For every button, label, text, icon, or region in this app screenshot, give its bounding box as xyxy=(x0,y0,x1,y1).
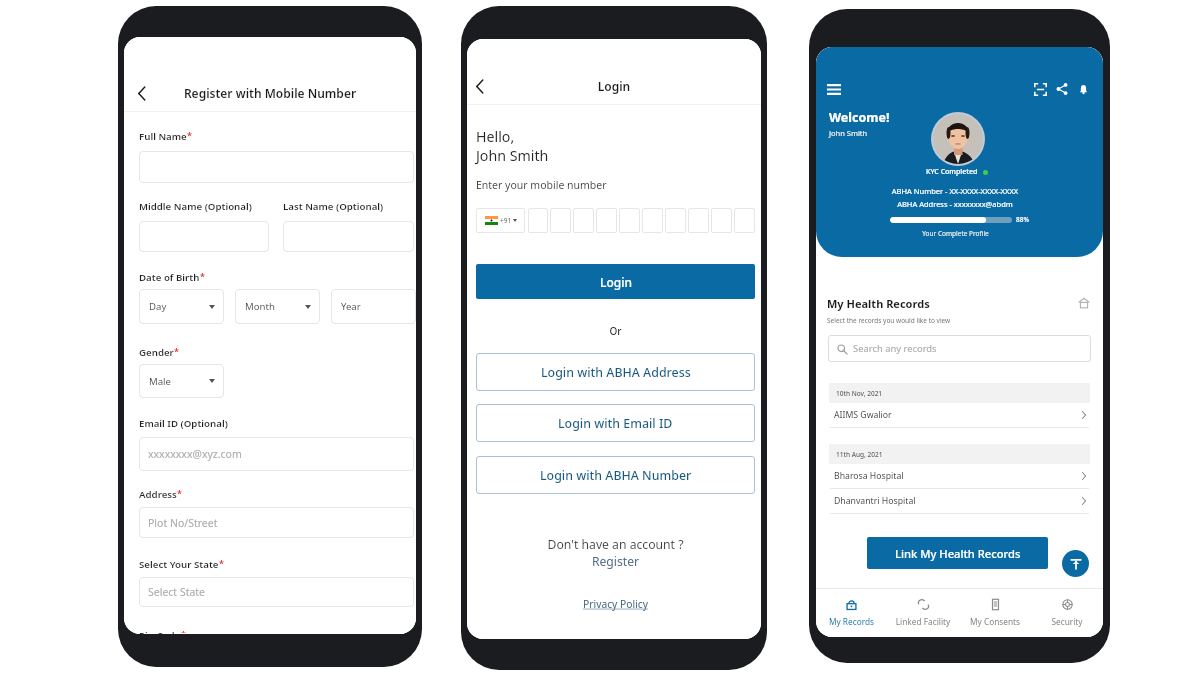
staticText: John Smith xyxy=(829,128,868,138)
staticText: Don't have an account ? xyxy=(476,536,755,553)
staticText: * xyxy=(219,557,224,569)
staticText: Gender xyxy=(139,346,174,359)
staticText: * xyxy=(200,270,205,282)
button[interactable] xyxy=(139,151,414,183)
staticText: Login with Email ID xyxy=(558,415,673,432)
button[interactable]: Share xyxy=(1053,80,1071,98)
staticText: Login xyxy=(600,274,632,290)
staticText: Register xyxy=(476,553,755,570)
button[interactable]: Scan QR xyxy=(1031,80,1049,98)
button[interactable]: Linked Facility xyxy=(887,589,959,637)
button[interactable] xyxy=(283,221,414,252)
staticText: Privacy Policy xyxy=(583,597,648,611)
staticText: * xyxy=(187,129,192,141)
staticText: Enter your mobile number xyxy=(476,178,607,192)
button[interactable]: Home xyxy=(1076,295,1092,311)
staticText: Last Name (Optional) xyxy=(283,200,384,213)
staticText: Login xyxy=(467,78,761,94)
staticText: Full Name xyxy=(139,130,187,143)
staticText: Register with Mobile Number xyxy=(124,85,416,101)
button[interactable]: Back xyxy=(470,76,490,96)
button[interactable] xyxy=(688,208,709,233)
staticText: Address xyxy=(139,488,177,501)
staticText: ABHA Address - xxxxxxxx@abdm xyxy=(816,199,1094,209)
button[interactable] xyxy=(596,208,617,233)
staticText: My Records xyxy=(816,616,887,627)
button[interactable] xyxy=(139,221,269,252)
staticText: +91 xyxy=(500,216,512,225)
staticText: My Health Records xyxy=(827,296,930,311)
staticText: Day xyxy=(149,300,167,313)
button[interactable] xyxy=(550,208,571,233)
button[interactable]: AIIMS Gwalior xyxy=(816,403,1103,428)
staticText: 10th Nov, 2021 xyxy=(836,389,883,398)
button[interactable]: Login with ABHA Number xyxy=(476,456,755,494)
staticText: Month xyxy=(245,300,275,313)
button[interactable]: Day xyxy=(139,289,224,324)
staticText: Pin Code xyxy=(139,629,181,634)
staticText: Your Complete Profile xyxy=(816,229,1095,238)
staticText: Login with ABHA Number xyxy=(540,467,692,484)
staticText: Security xyxy=(1031,616,1103,627)
staticText: Or xyxy=(476,324,755,338)
button[interactable]: Privacy Policy xyxy=(476,597,755,611)
button[interactable]: Year xyxy=(331,289,416,324)
button[interactable]: Notifications xyxy=(1074,80,1092,98)
staticText: Hello, xyxy=(476,127,515,146)
staticText: Date of Birth xyxy=(139,271,200,284)
staticText: Select State xyxy=(148,585,206,599)
button[interactable]: Select State xyxy=(139,577,414,607)
button[interactable] xyxy=(619,208,640,233)
button[interactable] xyxy=(573,208,594,233)
staticText: Link My Health Records xyxy=(895,546,1021,561)
staticText: 11th Aug, 2021 xyxy=(836,450,883,459)
button[interactable] xyxy=(642,208,663,233)
button[interactable]: Security xyxy=(1031,589,1103,637)
button[interactable]: My Consents xyxy=(959,589,1031,637)
staticText: Year xyxy=(341,300,361,313)
button[interactable] xyxy=(528,208,548,233)
button[interactable]: Back xyxy=(132,83,152,103)
staticText: Plot No/Street xyxy=(148,516,218,530)
button[interactable]: Month xyxy=(235,289,320,324)
button[interactable]: Menu xyxy=(827,79,847,99)
button[interactable]: Login xyxy=(476,264,755,299)
button[interactable] xyxy=(711,208,732,233)
staticText: Email ID (Optional) xyxy=(139,417,228,430)
staticText: ABHA Number - XX-XXXX-XXXX-XXXX xyxy=(816,186,1094,196)
staticText: Welcome! xyxy=(829,109,890,126)
staticText: * xyxy=(177,487,182,499)
staticText: Select Your State xyxy=(139,558,219,571)
staticText: 88% xyxy=(1016,215,1029,224)
button[interactable]: Link My Health Records xyxy=(867,537,1048,569)
staticText: Login with ABHA Address xyxy=(541,364,691,381)
button[interactable]: xxxxxxxx@xyz.com xyxy=(139,437,414,471)
button[interactable]: My Records xyxy=(816,589,887,637)
staticText: John Smith xyxy=(476,146,549,165)
staticText: Search any records xyxy=(853,342,937,355)
button[interactable]: Login with ABHA Address xyxy=(476,353,755,391)
staticText: My Consents xyxy=(959,616,1031,627)
button[interactable]: Bharosa Hospital xyxy=(816,464,1103,489)
button[interactable]: Don't have an account ? xyxy=(476,536,755,570)
staticText: Bharosa Hospital xyxy=(834,470,904,482)
staticText: AIIMS Gwalior xyxy=(834,409,892,421)
button[interactable]: Male xyxy=(139,364,224,398)
button[interactable] xyxy=(665,208,686,233)
button[interactable]: Plot No/Street xyxy=(139,507,414,538)
button[interactable]: Upload record xyxy=(1062,550,1089,577)
button[interactable]: +91 xyxy=(476,208,525,233)
staticText: * xyxy=(181,628,186,633)
staticText: Male xyxy=(149,375,171,388)
staticText: KYC Completed xyxy=(926,167,978,177)
staticText: Dhanvantri Hospital xyxy=(834,495,916,507)
button[interactable] xyxy=(734,208,755,233)
staticText: xxxxxxxx@xyz.com xyxy=(148,447,242,461)
button[interactable]: Search any records xyxy=(828,335,1091,362)
staticText: * xyxy=(174,345,179,357)
staticText: Middle Name (Optional) xyxy=(139,200,252,213)
button[interactable]: Login with Email ID xyxy=(476,404,755,442)
staticText: Linked Facility xyxy=(887,616,959,627)
staticText: Select the records you would like to vie… xyxy=(827,316,951,325)
button[interactable]: Dhanvantri Hospital xyxy=(816,489,1103,514)
